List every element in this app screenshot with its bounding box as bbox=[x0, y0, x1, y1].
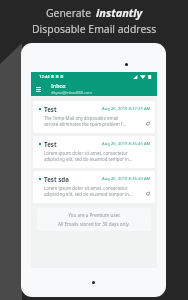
staticText: adipiscing elit, sed do eiusmod tempor i… bbox=[44, 156, 133, 162]
staticText: Aug 26, 2019 8:37:35 AM bbox=[102, 106, 151, 112]
staticText: Aug 26, 2019 8:36:45 AM bbox=[102, 141, 151, 147]
staticText: Test bbox=[44, 140, 57, 148]
button[interactable]: Test bbox=[33, 136, 155, 168]
staticText: Inbox bbox=[51, 82, 66, 89]
staticText: dkyaxi@inbox888.com bbox=[51, 90, 92, 95]
staticText: You are a Premium user. bbox=[68, 212, 121, 218]
staticText: 12:44 bbox=[39, 74, 50, 80]
other: Attachment bbox=[145, 121, 151, 126]
staticText: Aug 26, 2019 8:36:30 AM bbox=[102, 176, 151, 182]
button[interactable]: Test bbox=[33, 101, 155, 133]
staticText: Generate bbox=[46, 6, 92, 20]
staticText: Lorem ipsum dolor sit amet, consectetur bbox=[44, 150, 128, 156]
staticText: Disposable Email address bbox=[32, 22, 157, 36]
other: Home bbox=[92, 281, 95, 284]
staticText: instantly bbox=[96, 5, 143, 20]
button[interactable]: Open navigation drawer bbox=[33, 83, 44, 94]
staticText: All Emails stored for 30 days only. bbox=[58, 221, 130, 227]
staticText: adipiscing elit, sed do eiusmod tempor i… bbox=[44, 191, 133, 197]
staticText: Test sda bbox=[44, 175, 69, 183]
staticText: service eliminates the spam problem f... bbox=[44, 121, 126, 127]
other: Attachment bbox=[145, 191, 151, 196]
staticText: Test bbox=[44, 105, 57, 113]
staticText: Lorem ipsum dolor sit amet, consectetur bbox=[44, 185, 128, 191]
staticText: The Temp-Mail.org disposable email bbox=[44, 115, 119, 121]
button[interactable]: Test sda bbox=[33, 171, 155, 203]
